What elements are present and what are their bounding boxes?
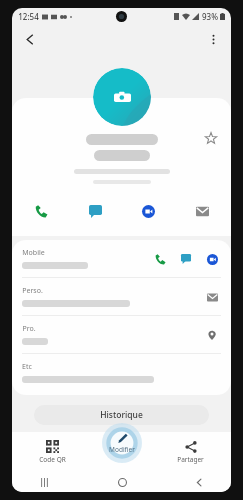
button[interactable]: Historique — [34, 405, 209, 425]
button[interactable]: Recent apps — [34, 472, 54, 492]
button[interactable]: Message — [80, 196, 110, 226]
button[interactable]: Video call — [133, 196, 163, 226]
button[interactable]: Video call — [201, 248, 223, 270]
button[interactable]: Back — [16, 25, 44, 53]
button[interactable]: Send message — [175, 248, 197, 270]
button[interactable]: Back — [189, 472, 209, 492]
button[interactable]: Code QR — [18, 432, 87, 472]
staticText: 12:54 — [18, 11, 39, 22]
button[interactable]: More options — [199, 25, 227, 53]
staticText: Code QR — [39, 455, 66, 464]
staticText: Etc — [22, 362, 32, 372]
button[interactable]: Etc — [12, 354, 231, 391]
staticText: Mobile — [22, 248, 45, 258]
staticText: 93% — [202, 11, 218, 22]
staticText: Pro. — [22, 324, 36, 334]
staticText: Perso. — [22, 286, 43, 296]
button[interactable]: Send email — [201, 286, 223, 308]
button[interactable]: Mobile — [12, 240, 231, 277]
staticText: Modifier — [109, 445, 135, 454]
button[interactable]: Home — [112, 472, 132, 492]
button[interactable]: Open map — [201, 324, 223, 346]
button[interactable]: Pro. — [12, 316, 231, 353]
staticText: Historique — [100, 409, 143, 421]
button[interactable]: Contact photo — [93, 68, 151, 126]
button[interactable]: Email — [187, 196, 217, 226]
staticText: Partager — [177, 455, 204, 464]
button[interactable]: Modifier — [95, 423, 149, 463]
button[interactable]: Favourite — [199, 126, 223, 150]
button[interactable]: Call — [26, 196, 56, 226]
button[interactable]: Call mobile — [149, 248, 171, 270]
button[interactable]: Perso. — [12, 278, 231, 315]
button[interactable]: Partager — [156, 432, 225, 472]
